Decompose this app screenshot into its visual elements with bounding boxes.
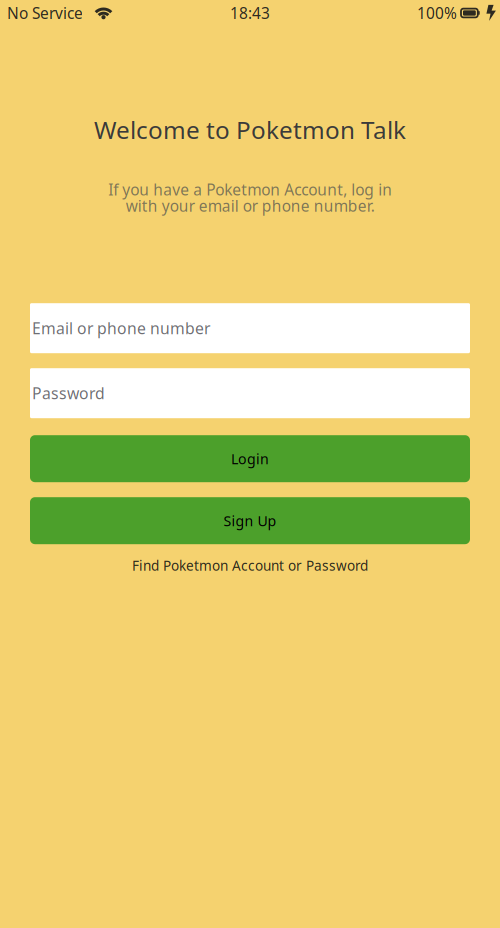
button[interactable]: Find Poketmon Account or Password: [132, 556, 368, 575]
staticText: Welcome to Poketmon Talk: [94, 113, 406, 146]
button[interactable]: Password: [30, 368, 470, 418]
staticText: No Service: [7, 2, 83, 24]
staticText: Login: [231, 449, 269, 468]
staticText: Email or phone number: [32, 317, 210, 339]
staticText: Password: [32, 382, 105, 404]
button[interactable]: Sign Up: [30, 497, 470, 544]
staticText: If you have a Poketmon Account, log in w…: [108, 179, 392, 216]
button[interactable]: Email or phone number: [30, 303, 470, 353]
button[interactable]: Login: [30, 435, 470, 482]
staticText: Find Poketmon Account or Password: [132, 556, 368, 575]
staticText: 100%: [417, 2, 457, 24]
staticText: 18:43: [230, 2, 270, 24]
staticText: Sign Up: [223, 511, 276, 530]
